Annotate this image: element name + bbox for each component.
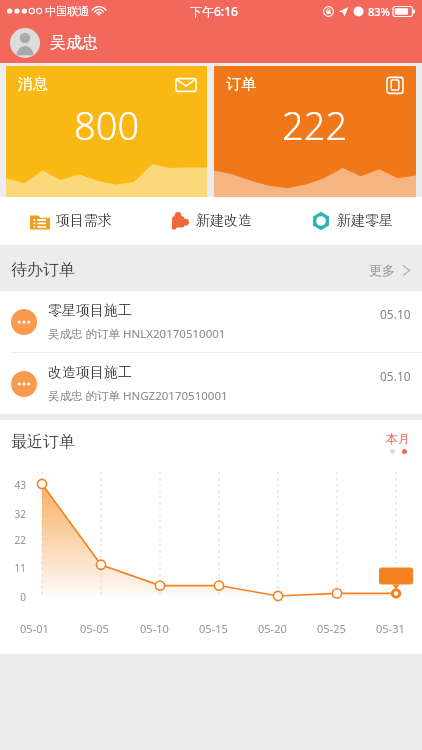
- staticText: 新建改造: [196, 212, 252, 230]
- other: 消息: [176, 75, 196, 95]
- staticText: 中国联通: [45, 4, 89, 18]
- staticText: 吴成忠 的订单 HNLX20170510001: [48, 326, 226, 342]
- staticText: 05-20: [258, 621, 287, 636]
- staticText: 05.10: [380, 368, 411, 384]
- staticText: 05-10: [140, 621, 169, 636]
- staticText: 吴成忠: [50, 33, 98, 53]
- staticText: 本月: [386, 431, 410, 446]
- staticText: 05.10: [380, 306, 411, 322]
- staticText: 更多: [369, 262, 395, 278]
- button[interactable]: 项目需求: [0, 197, 140, 245]
- staticText: 新建零星: [337, 212, 393, 230]
- button[interactable]: 新建改造: [140, 197, 281, 245]
- staticText: 消息: [18, 75, 48, 94]
- staticText: 零星项目施工: [48, 302, 132, 320]
- staticText: 05-15: [199, 621, 228, 636]
- button[interactable]: 改造项目施工: [0, 353, 422, 414]
- button[interactable]: 本月: [386, 431, 410, 454]
- button[interactable]: 吴成忠: [0, 22, 422, 63]
- staticText: 项目需求: [56, 212, 112, 230]
- other: 订单: [385, 75, 405, 95]
- staticText: 05-01: [20, 621, 49, 636]
- button[interactable]: 消息: [6, 66, 207, 197]
- staticText: 43: [0, 478, 26, 492]
- staticText: 22: [0, 533, 26, 547]
- staticText: 改造项目施工: [48, 364, 132, 382]
- button[interactable]: 新建零星: [281, 197, 422, 245]
- staticText: 05-25: [317, 621, 346, 636]
- button[interactable]: 订单: [214, 66, 416, 197]
- staticText: 订单: [226, 75, 256, 94]
- staticText: 222: [282, 99, 348, 151]
- staticText: 05-31: [376, 621, 405, 636]
- staticText: 05-05: [80, 621, 109, 636]
- staticText: 800: [74, 99, 140, 151]
- staticText: 下午6:16: [190, 3, 238, 19]
- staticText: 11: [0, 561, 26, 575]
- staticText: 待办订单: [11, 260, 75, 280]
- staticText: 吴成忠 的订单 HNGZ20170510001: [48, 388, 228, 404]
- staticText: 83%: [368, 4, 390, 19]
- staticText: 32: [0, 507, 26, 521]
- button[interactable]: 待办订单: [0, 249, 422, 291]
- staticText: 最近订单: [11, 432, 75, 452]
- staticText: 0: [0, 590, 26, 604]
- button[interactable]: 零星项目施工: [0, 291, 422, 352]
